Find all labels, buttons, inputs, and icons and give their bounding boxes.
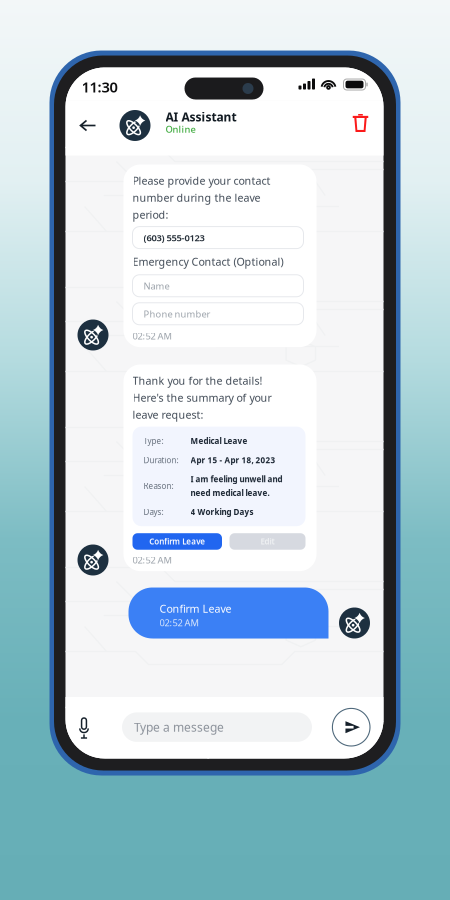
staticText: 02:52 AM <box>132 554 171 566</box>
button[interactable]: Edit <box>229 533 305 550</box>
staticText: Days: <box>143 507 163 517</box>
staticText: Name <box>143 280 169 292</box>
button[interactable]: Voice input <box>69 713 99 743</box>
staticText: 02:52 AM <box>159 616 198 629</box>
staticText: Thank you for the details! Here's the su… <box>132 373 271 422</box>
staticText: Type a messege <box>134 719 224 735</box>
button[interactable]: Confirm Leave <box>132 533 222 550</box>
staticText: Confirm Leave <box>149 536 205 547</box>
staticText: I am feeling unwell and need medical lea… <box>190 474 282 498</box>
staticText: 11:30 <box>81 77 117 96</box>
button[interactable]: Send <box>332 708 370 746</box>
staticText: Please provide your contact number durin… <box>132 173 270 222</box>
staticText: Edit <box>260 536 274 547</box>
staticText: Duration: <box>143 455 178 465</box>
staticText: Apr 15 - Apr 18, 2023 <box>190 455 275 465</box>
button[interactable]: Delete conversation <box>344 107 376 139</box>
staticText: Medical Leave <box>190 436 247 446</box>
button[interactable]: Type a messege <box>122 712 312 742</box>
staticText: 02:52 AM <box>132 330 171 342</box>
button[interactable]: Back <box>72 110 103 140</box>
staticText: Type: <box>143 436 163 446</box>
staticText: 4 Working Days <box>190 507 253 517</box>
staticText: Confirm Leave <box>159 601 231 616</box>
staticText: Online <box>165 123 195 135</box>
staticText: Emergency Contact (Optional) <box>132 255 283 269</box>
staticText: (603) 555-0123 <box>143 231 204 244</box>
staticText: Phone number <box>143 308 210 320</box>
staticText: Reason: <box>143 481 173 491</box>
staticText: AI Assistant <box>165 109 236 125</box>
